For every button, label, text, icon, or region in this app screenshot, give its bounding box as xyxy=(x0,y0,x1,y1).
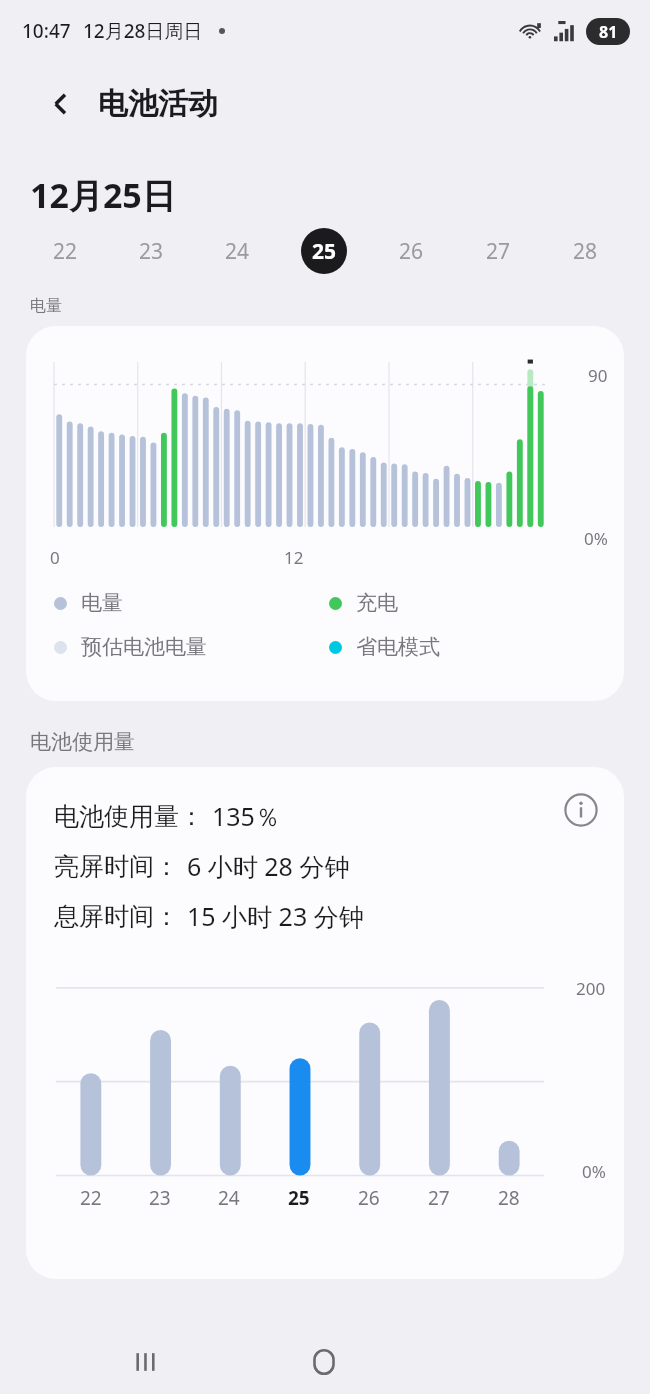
staticText: 电量 xyxy=(81,590,123,616)
button[interactable]: 24 xyxy=(194,1185,264,1225)
staticText: 28 xyxy=(498,1185,520,1211)
staticText: 0% xyxy=(584,527,608,550)
button[interactable]: 28 xyxy=(474,1185,544,1225)
staticText: 27 xyxy=(428,1185,450,1211)
staticText: 23 xyxy=(149,1185,171,1211)
staticText: 81 xyxy=(599,21,618,43)
button[interactable]: 充电 xyxy=(329,590,604,616)
button[interactable]: 26 xyxy=(334,1185,404,1225)
button[interactable]: 25 xyxy=(280,222,367,280)
staticText: 充电 xyxy=(356,590,398,616)
staticText: 亮屏时间： xyxy=(54,851,179,882)
staticText: 25 xyxy=(288,1185,310,1211)
button[interactable]: 25 xyxy=(264,1185,334,1225)
button[interactable]: 22 xyxy=(22,222,108,280)
staticText: 电量 xyxy=(30,296,62,316)
staticText: 12 xyxy=(284,546,304,569)
staticText: 电池活动 xyxy=(98,85,218,123)
staticText: 28 xyxy=(573,237,598,266)
staticText: 12月25日 xyxy=(30,172,176,218)
button[interactable]: 27 xyxy=(454,222,541,280)
button[interactable]: 返回 xyxy=(40,83,82,125)
staticText: 息屏时间： xyxy=(54,901,179,932)
staticText: 0 xyxy=(50,546,60,569)
button[interactable]: 23 xyxy=(125,1185,194,1225)
staticText: 25 xyxy=(312,237,337,266)
staticText: 90 xyxy=(588,364,608,387)
staticText: 12月28日周日 xyxy=(83,18,203,44)
button[interactable]: 主屏幕 xyxy=(292,1330,356,1394)
staticText: 省电模式 xyxy=(356,634,440,660)
staticText: 24 xyxy=(218,1185,240,1211)
button[interactable]: 电量 xyxy=(54,590,329,616)
button[interactable]: 省电模式 xyxy=(329,634,604,660)
button[interactable]: 23 xyxy=(108,222,194,280)
staticText: 23 xyxy=(139,237,164,266)
button[interactable]: 最近任务 xyxy=(114,1330,178,1394)
staticText: 电池使用量 xyxy=(30,729,135,755)
staticText: 135％ xyxy=(212,799,280,833)
button[interactable]: 24 xyxy=(194,222,280,280)
button[interactable]: 22 xyxy=(56,1185,125,1225)
button[interactable]: 28 xyxy=(541,222,628,280)
staticText: 26 xyxy=(399,237,424,266)
staticText: 24 xyxy=(225,237,250,266)
button[interactable]: 90 xyxy=(26,326,624,701)
button[interactable]: 电池使用量： xyxy=(26,767,624,1279)
button[interactable]: 27 xyxy=(404,1185,474,1225)
staticText: 22 xyxy=(53,237,78,266)
staticText: 0% xyxy=(582,1160,606,1183)
button[interactable]: 26 xyxy=(367,222,454,280)
staticText: 10:47 xyxy=(22,18,71,44)
staticText: 预估电池电量 xyxy=(81,634,207,660)
staticText: 22 xyxy=(80,1185,102,1211)
staticText: 26 xyxy=(358,1185,380,1211)
staticText: 6 小时 28 分钟 xyxy=(187,849,350,883)
button[interactable]: 预估电池电量 xyxy=(54,634,329,660)
staticText: 27 xyxy=(486,237,511,266)
staticText: 15 小时 23 分钟 xyxy=(187,899,364,933)
staticText: 电池使用量： xyxy=(54,801,204,832)
button[interactable]: 信息 xyxy=(560,789,602,831)
staticText: 200 xyxy=(576,977,606,1000)
